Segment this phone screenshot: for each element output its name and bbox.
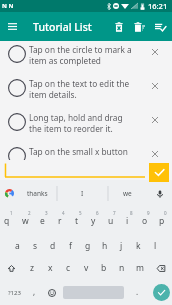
staticText: . — [136, 286, 139, 297]
button[interactable]: Delete completed items — [129, 16, 150, 37]
button[interactable]: l — [147, 231, 164, 256]
staticText: 8 — [130, 210, 133, 216]
button[interactable]: 6 — [85, 207, 102, 231]
button[interactable]: Tap on the circle to mark a — [0, 41, 172, 75]
button[interactable]: k — [130, 231, 147, 256]
staticText: 16:21 — [148, 1, 168, 11]
staticText: m — [136, 262, 144, 274]
staticText: o — [142, 215, 148, 227]
button[interactable]: Tap on the text to edit the — [0, 75, 172, 109]
button[interactable]: 0 — [153, 207, 170, 231]
staticText: k — [136, 240, 141, 252]
button[interactable]: Backspace — [149, 256, 172, 280]
button[interactable]: c — [59, 256, 77, 280]
staticText: u — [108, 215, 114, 227]
button[interactable]: Save item — [149, 163, 169, 182]
staticText: thanks — [27, 189, 48, 198]
staticText: 3 — [45, 210, 48, 216]
button[interactable]: f — [62, 231, 79, 256]
staticText: q — [4, 215, 10, 227]
button[interactable]: Shift — [0, 256, 23, 280]
button[interactable]: s — [26, 231, 44, 256]
staticText: r — [58, 215, 62, 227]
button[interactable]: 3 — [34, 207, 51, 231]
button[interactable]: 1 — [0, 207, 16, 231]
button[interactable]: z — [23, 256, 41, 280]
staticText: v — [84, 262, 89, 274]
staticText: Long tap, hold and drag — [29, 112, 123, 123]
staticText: e — [40, 215, 45, 227]
staticText: b — [101, 262, 107, 274]
button[interactable]: 2 — [16, 207, 34, 231]
staticText: the item to reorder it. — [29, 123, 113, 134]
button[interactable]: h — [96, 231, 113, 256]
staticText: 1 — [10, 210, 13, 216]
button[interactable]: . — [124, 280, 150, 305]
staticText: 2 — [28, 210, 31, 216]
staticText: item as completed — [29, 55, 101, 66]
button[interactable]: b — [95, 256, 113, 280]
staticText: y — [91, 215, 96, 227]
staticText: I — [81, 189, 84, 198]
button[interactable]: Remove item — [149, 148, 161, 160]
staticText: z — [30, 262, 34, 274]
button[interactable]: n — [113, 256, 131, 280]
button[interactable]: Delete all items — [108, 16, 129, 37]
staticText: d — [50, 240, 56, 252]
staticText: 0 — [164, 210, 167, 216]
staticText: a — [15, 240, 20, 252]
button[interactable]: Voice input — [147, 180, 172, 207]
button[interactable]: 5 — [68, 207, 85, 231]
staticText: 4 — [62, 210, 65, 216]
staticText: p — [159, 215, 165, 227]
button[interactable]: Remove item — [149, 46, 161, 58]
staticText: t — [75, 215, 79, 227]
staticText: 9 — [147, 210, 150, 216]
button[interactable]: 8 — [119, 207, 136, 231]
button[interactable]: a — [8, 231, 26, 256]
staticText: g — [85, 240, 91, 252]
button[interactable]: g — [79, 231, 96, 256]
staticText: Tutorial List — [33, 20, 92, 34]
staticText: x — [48, 262, 53, 274]
staticText: ?123 — [8, 289, 21, 297]
button[interactable]: Enter — [150, 280, 172, 305]
staticText: j — [120, 240, 123, 252]
staticText: 7 — [113, 210, 116, 216]
staticText: Tap on the small x button — [29, 146, 128, 157]
staticText: h — [102, 240, 108, 252]
button[interactable]: Remove item — [149, 80, 161, 92]
button[interactable]: j — [113, 231, 130, 256]
button[interactable]: 9 — [136, 207, 153, 231]
button[interactable]: x — [41, 256, 59, 280]
staticText: s — [33, 240, 38, 252]
button[interactable]: m — [131, 256, 149, 280]
staticText: f — [69, 240, 72, 252]
button[interactable]: v — [77, 256, 95, 280]
button[interactable]: 4 — [51, 207, 68, 231]
staticText: , — [33, 286, 36, 297]
staticText: i — [126, 215, 129, 227]
staticText: 6 — [96, 210, 99, 216]
staticText: Tap on the circle to mark a — [29, 44, 132, 55]
button[interactable]: ?123 — [0, 280, 28, 305]
button[interactable]: d — [44, 231, 62, 256]
staticText: N N — [2, 2, 14, 10]
button[interactable]: Open menu — [4, 18, 21, 35]
button[interactable]: , — [28, 280, 41, 305]
staticText: we — [123, 189, 132, 198]
staticText: Tap on the text to edit the — [29, 78, 130, 89]
button[interactable]: Remove item — [149, 114, 161, 126]
staticText: 5 — [79, 210, 82, 216]
staticText: w — [22, 215, 29, 227]
staticText: c — [66, 262, 71, 274]
button[interactable]: 7 — [102, 207, 119, 231]
button[interactable]: Tap on the small x button — [0, 143, 172, 177]
staticText: item details. — [29, 89, 77, 100]
button[interactable]: Emoji — [41, 280, 63, 305]
staticText: l — [154, 240, 157, 252]
staticText: n — [119, 262, 125, 274]
button[interactable]: Mark all completed — [150, 16, 171, 37]
button[interactable]: Long tap, hold and drag — [0, 109, 172, 143]
